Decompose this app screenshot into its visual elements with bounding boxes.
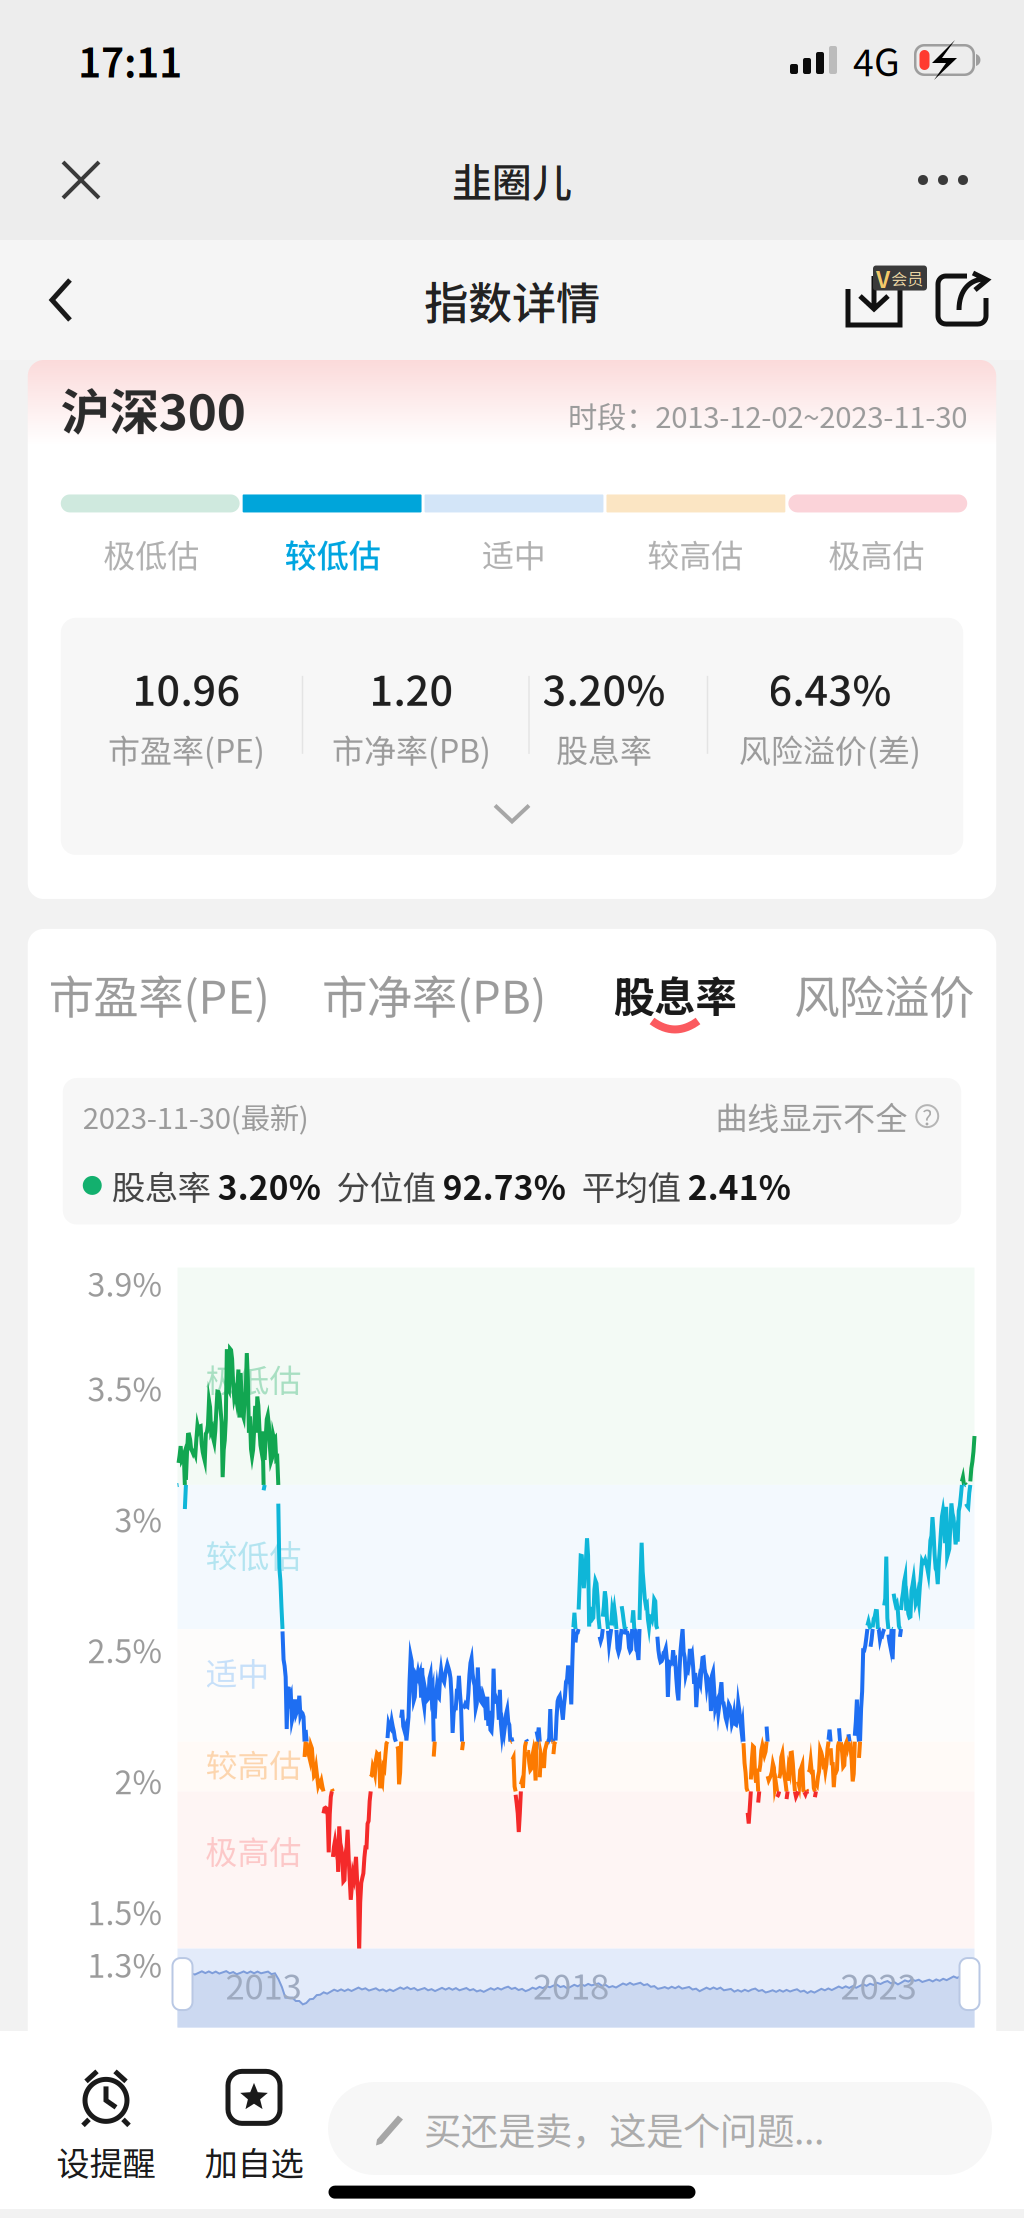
- button[interactable]: 分享: [920, 257, 1006, 343]
- staticText: 市盈率(PE): [48, 961, 269, 1027]
- staticText: 股息率: [556, 726, 652, 772]
- button[interactable]: 市盈率(PE): [28, 967, 290, 1039]
- button[interactable]: 关闭: [38, 137, 124, 223]
- staticText: 曲线显示不全: [715, 1093, 907, 1139]
- staticText: 较高估: [205, 1740, 301, 1787]
- staticText: 92.73%: [443, 1161, 566, 1210]
- staticText: 2%: [114, 1757, 161, 1803]
- staticText: 分位值: [337, 1161, 443, 1210]
- staticText: 6.43%: [768, 658, 891, 718]
- staticText: 风险溢价(差): [739, 726, 921, 772]
- staticText: 极高估: [205, 1827, 301, 1873]
- staticText: 时段：2013-12-02~2023-11-30: [568, 394, 967, 436]
- staticText: 较低估: [205, 1531, 301, 1577]
- staticText: 2.5%: [87, 1626, 161, 1673]
- button[interactable]: 下载: [828, 257, 920, 343]
- staticText: 买还是卖，这是个问题...: [424, 2101, 824, 2156]
- staticText: 适中: [205, 1649, 269, 1695]
- staticText: 较低估: [285, 530, 381, 577]
- staticText: 2023: [840, 1959, 916, 2010]
- button[interactable]: 设提醒: [0, 2025, 180, 2186]
- staticText: 2.41%: [688, 1161, 791, 1210]
- staticText: 风险溢价: [794, 961, 974, 1027]
- staticText: 沪深300: [61, 373, 246, 444]
- button[interactable]: 风险溢价: [772, 967, 996, 1039]
- button[interactable]: 市净率(PB): [290, 967, 578, 1039]
- staticText: 极低估: [205, 1355, 301, 1402]
- staticText: 1.3%: [87, 1941, 161, 1987]
- staticText: 17:11: [78, 31, 182, 89]
- staticText: 1.5%: [87, 1888, 161, 1934]
- staticText: 指数详情: [424, 268, 600, 332]
- staticText: 加自选: [204, 2137, 303, 2186]
- button[interactable]: 加自选: [180, 2025, 328, 2186]
- staticText: V: [876, 262, 890, 294]
- button[interactable]: 买还是卖，这是个问题...: [328, 2036, 1024, 2175]
- staticText: 4G: [853, 33, 900, 87]
- staticText: 较高估: [647, 530, 743, 577]
- staticText: 2023-11-30(最新): [83, 1095, 309, 1137]
- staticText: 极高估: [829, 530, 925, 577]
- staticText: 市净率(PB): [322, 961, 546, 1027]
- staticText: 3%: [114, 1495, 161, 1542]
- staticText: 市净率(PB): [332, 726, 491, 772]
- button[interactable]: 返回: [18, 257, 104, 343]
- staticText: 2018: [533, 1959, 609, 2010]
- staticText: 会员: [891, 266, 923, 290]
- staticText: ?: [922, 1101, 932, 1132]
- staticText: 韭圈儿: [452, 151, 572, 209]
- staticText: 平均值: [582, 1161, 688, 1210]
- staticText: 1.20: [369, 658, 453, 718]
- staticText: 3.5%: [87, 1364, 161, 1411]
- staticText: 3.9%: [87, 1260, 161, 1306]
- button[interactable]: 股息率: [578, 967, 772, 1039]
- button[interactable]: 更多: [900, 137, 986, 223]
- staticText: 适中: [482, 530, 546, 577]
- staticText: 股息率: [613, 964, 736, 1024]
- staticText: 极低估: [103, 530, 199, 577]
- staticText: 股息率: [112, 1161, 218, 1210]
- staticText: 3.20%: [218, 1161, 321, 1210]
- staticText: 2013: [225, 1959, 301, 2010]
- button[interactable]: 展开更多指标: [61, 772, 963, 855]
- staticText: 3.20%: [542, 658, 665, 718]
- staticText: 市盈率(PE): [108, 726, 265, 772]
- staticText: 10.96: [132, 658, 240, 718]
- staticText: 设提醒: [56, 2137, 155, 2186]
